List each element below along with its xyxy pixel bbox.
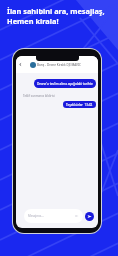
staticText: Hemen kirala! [7,16,59,26]
staticText: Teklif sunmanız bildirisi [23,94,55,98]
staticText: Mesajınız... [28,214,44,218]
staticText: Teşekkürler 13:42 [66,103,93,107]
staticText: Drone'u teslim alma aşağıdaki tarihte [37,82,93,86]
button[interactable]: Send [85,212,94,221]
button[interactable]: Back [16,56,98,73]
button[interactable]: Mesajınız... [24,209,83,223]
staticText: İlan sahibini ara, mesajlaş, [7,6,105,16]
other: Back [18,62,23,67]
staticText: Barış - Drone Kiralık DJI MAVIC [37,63,81,67]
